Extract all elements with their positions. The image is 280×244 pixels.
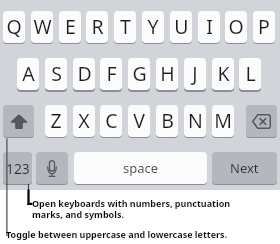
button[interactable]: K [212, 58, 234, 90]
staticText: Open keyboards with numbers, punctuation… [32, 197, 231, 221]
button[interactable]: D [73, 58, 95, 90]
staticText: D [77, 60, 92, 87]
button[interactable]: X [73, 105, 95, 137]
staticText: G [132, 60, 147, 87]
button[interactable]: J [184, 58, 206, 90]
button[interactable]: B [156, 105, 178, 137]
button[interactable]: L [239, 58, 261, 90]
staticText: C [105, 107, 118, 134]
button[interactable]: T [114, 11, 136, 43]
button[interactable]: I [198, 11, 220, 43]
staticText: F [106, 60, 117, 87]
staticText: I [206, 13, 213, 40]
button[interactable]: C [100, 105, 122, 137]
staticText: S [51, 60, 62, 87]
button[interactable]: R [86, 11, 108, 43]
staticText: W [33, 13, 52, 40]
staticText: T [120, 13, 131, 40]
button[interactable]: Backspace [246, 105, 277, 137]
staticText: R [91, 13, 104, 40]
staticText: P [258, 13, 270, 40]
button[interactable]: P [253, 11, 275, 43]
staticText: L [245, 60, 256, 87]
staticText: Next [230, 159, 259, 177]
button[interactable]: U [170, 11, 192, 43]
button[interactable]: G [128, 58, 150, 90]
button[interactable]: V [128, 105, 150, 137]
button[interactable]: space [74, 152, 207, 184]
staticText: Q [6, 13, 22, 40]
staticText: J [192, 60, 198, 87]
staticText: E [65, 13, 76, 40]
staticText: H [160, 60, 175, 87]
button[interactable]: Y [142, 11, 164, 43]
button[interactable]: H [156, 58, 178, 90]
button[interactable]: N [184, 105, 206, 137]
button[interactable]: Next [212, 152, 277, 184]
staticText: K [217, 60, 230, 87]
button[interactable]: O [225, 11, 247, 43]
button[interactable]: M [212, 105, 234, 137]
staticText: A [22, 60, 35, 87]
button[interactable]: Z [45, 105, 67, 137]
staticText: V [133, 107, 145, 134]
staticText: B [161, 107, 174, 134]
button[interactable]: S [45, 58, 67, 90]
button[interactable]: Q [3, 11, 25, 43]
staticText: Z [50, 107, 62, 134]
staticText: space [123, 159, 159, 177]
button[interactable]: W [31, 11, 53, 43]
button[interactable]: Shift [3, 105, 34, 137]
staticText: O [228, 13, 244, 40]
button[interactable]: F [100, 58, 122, 90]
staticText: Toggle between uppercase and lowercase l… [6, 228, 228, 240]
button[interactable]: 123 [3, 152, 32, 184]
button[interactable]: Dictation [36, 152, 68, 184]
staticText: M [214, 107, 232, 134]
staticText: Y [147, 13, 159, 40]
staticText: N [188, 107, 203, 134]
button[interactable]: A [17, 58, 39, 90]
staticText: U [174, 13, 189, 40]
staticText: X [78, 107, 90, 134]
button[interactable]: E [59, 11, 81, 43]
staticText: 123 [6, 159, 30, 178]
